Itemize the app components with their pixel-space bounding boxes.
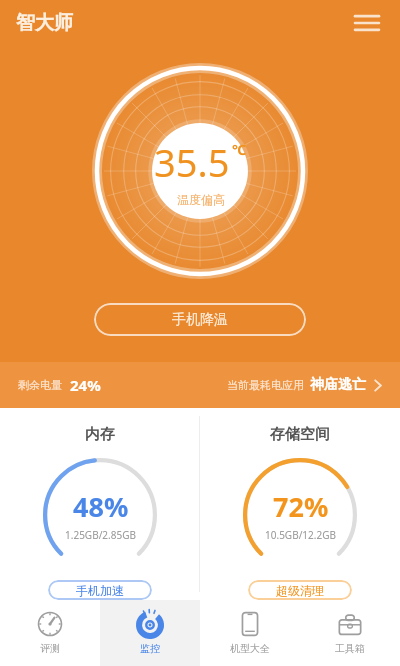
staticText: 72% [273,488,329,525]
button[interactable]: 工具箱 [300,600,400,666]
staticText: 监控 [140,642,160,655]
button[interactable]: 存储空间 [200,408,400,600]
staticText: 温度偏高 [177,192,225,207]
button[interactable]: 机型大全 [200,600,300,666]
button[interactable]: 评测 [0,600,100,666]
staticText: 神庙逃亡 [310,376,366,394]
staticText: 35.5 [154,136,230,188]
staticText: 手机加速 [76,583,124,598]
button[interactable]: 剩余电量 [0,362,400,408]
staticText: 当前最耗电应用 [227,378,304,392]
button[interactable]: Menu [350,6,384,40]
staticText: 剩余电量 [18,378,62,392]
staticText: 手机降温 [172,311,228,329]
button[interactable]: 超级清理 [248,580,352,600]
staticText: 48% [73,488,129,525]
staticText: ℃ [232,140,247,159]
staticText: 评测 [40,642,60,655]
staticText: 内存 [85,425,115,444]
button[interactable]: 手机降温 [94,303,306,336]
staticText: 1.25GB/2.85GB [65,528,136,542]
staticText: 机型大全 [230,642,270,655]
button[interactable]: 手机加速 [48,580,152,600]
staticText: 10.5GB/12.2GB [265,528,336,542]
staticText: 存储空间 [270,425,330,444]
button[interactable]: 内存 [0,408,199,600]
button[interactable]: 智大师 [16,11,73,35]
staticText: 超级清理 [276,583,324,598]
staticText: 工具箱 [335,642,365,655]
staticText: 24% [70,375,101,395]
button[interactable]: 监控 [100,600,200,666]
